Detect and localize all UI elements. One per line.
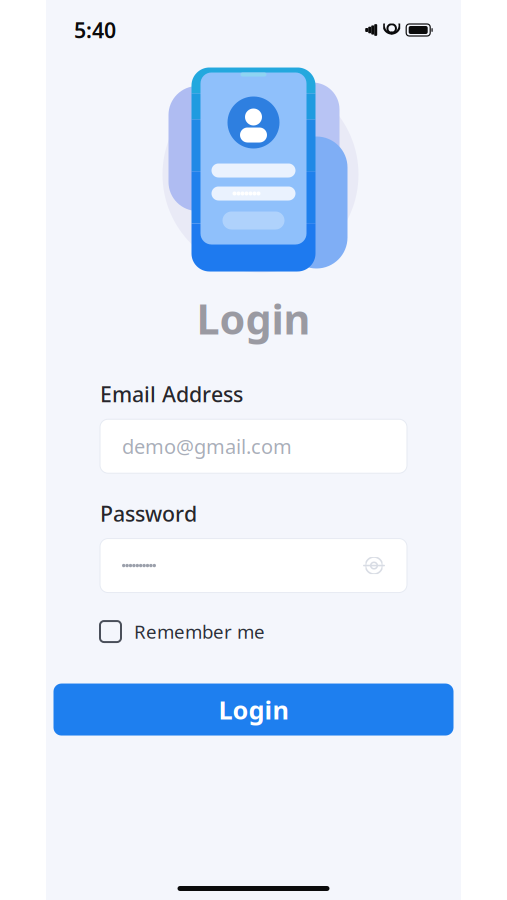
staticText: demo@gmail.com [122,433,292,459]
staticText: Login [196,291,310,346]
staticText: Password [100,499,197,527]
staticText: Email Address [100,380,243,408]
button[interactable]: Remember me [46,614,461,648]
button[interactable]: Login [53,683,453,735]
staticText: Login [218,693,288,726]
staticText: 5:40 [74,16,116,44]
staticText: Remember me [134,619,265,644]
